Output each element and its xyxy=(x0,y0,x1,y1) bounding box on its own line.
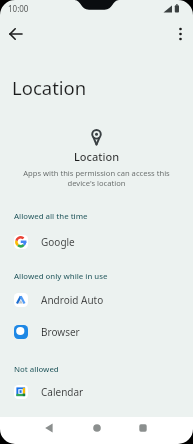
staticText: Apps with this permission can access thi… xyxy=(0,168,193,188)
staticText: Location xyxy=(0,149,193,164)
button[interactable] xyxy=(131,416,155,440)
button[interactable] xyxy=(4,22,28,46)
staticText: Location xyxy=(12,75,87,100)
staticText: Browser xyxy=(41,325,80,339)
staticText: Calendar xyxy=(41,385,84,399)
button[interactable]: Calendar xyxy=(0,377,193,407)
staticText: Allowed only while in use xyxy=(14,271,108,282)
button[interactable] xyxy=(85,416,109,440)
button[interactable] xyxy=(37,416,61,440)
staticText: Android Auto xyxy=(41,293,104,307)
staticText: Allowed all the time xyxy=(14,211,88,222)
button[interactable] xyxy=(168,22,192,46)
staticText: Not allowed xyxy=(14,364,59,375)
staticText: 10:00 xyxy=(8,3,29,14)
button[interactable]: Google xyxy=(0,227,193,257)
staticText: Google xyxy=(41,235,75,249)
button[interactable]: Browser xyxy=(0,317,193,347)
button[interactable]: Android Auto xyxy=(0,285,193,315)
